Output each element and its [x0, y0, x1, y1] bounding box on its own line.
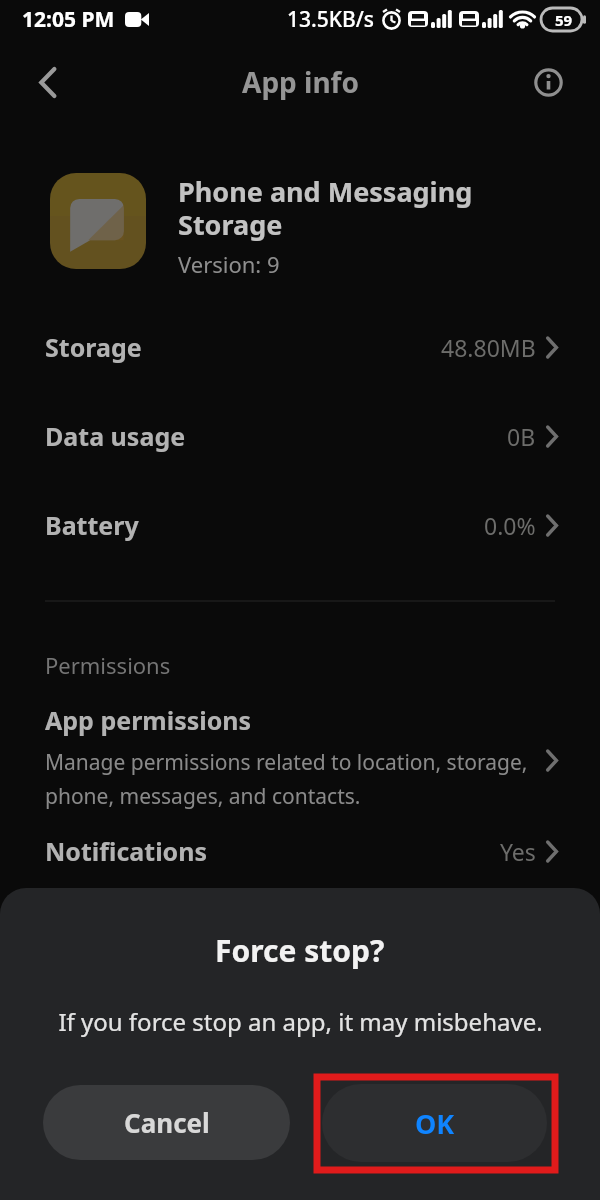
- staticText: Yes: [500, 836, 536, 867]
- button[interactable]: Battery: [0, 493, 600, 557]
- staticText: If you force stop an app, it may misbeha…: [58, 1005, 543, 1038]
- staticText: Data usage: [45, 419, 186, 453]
- staticText: Cancel: [124, 1105, 210, 1140]
- button[interactable]: Storage: [0, 315, 600, 379]
- staticText: Notifications: [45, 834, 208, 868]
- staticText: 13.5KB/s: [287, 5, 375, 34]
- button[interactable]: [26, 60, 70, 104]
- staticText: Battery: [45, 508, 139, 542]
- staticText: 0.0%: [484, 510, 536, 541]
- staticText: App info: [242, 63, 359, 101]
- button[interactable]: Cancel: [43, 1085, 290, 1160]
- staticText: OK: [415, 1105, 455, 1142]
- staticText: 59: [555, 10, 573, 30]
- staticText: App permissions: [45, 703, 252, 737]
- staticText: Version: 9: [178, 249, 280, 279]
- button[interactable]: [530, 64, 566, 100]
- staticText: Permissions: [45, 650, 171, 680]
- staticText: Phone and Messaging Storage: [178, 173, 473, 243]
- staticText: Force stop?: [215, 930, 385, 971]
- staticText: Storage: [45, 330, 142, 364]
- button[interactable]: Notifications: [0, 819, 600, 883]
- staticText: Manage permissions related to location, …: [45, 748, 528, 810]
- button[interactable]: App permissions: [0, 703, 600, 818]
- staticText: 48.80MB: [441, 332, 536, 363]
- button[interactable]: Data usage: [0, 404, 600, 468]
- staticText: 0B: [507, 421, 536, 452]
- button[interactable]: OK: [322, 1084, 547, 1162]
- button[interactable]: Phone and Messaging Storage: [50, 173, 473, 279]
- staticText: 12:05 PM: [22, 5, 115, 34]
